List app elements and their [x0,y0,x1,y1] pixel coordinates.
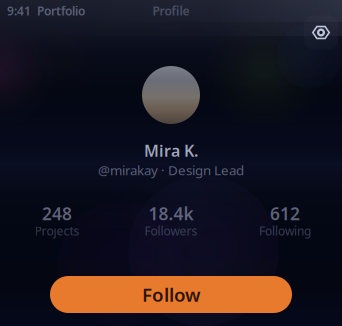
staticText: Followers [144,223,197,239]
staticText: 18.4k [148,202,193,225]
staticText: Projects [34,223,79,239]
staticText: 9:41 Portfolio [7,3,85,19]
staticText: Follow [142,282,200,307]
button[interactable]: Settings [304,15,338,49]
staticText: 248 [42,202,72,225]
staticText: 612 [270,202,300,225]
staticText: @mirakay · Design Lead [98,161,244,179]
button[interactable]: Follow [50,276,292,313]
staticText: Mira K. [144,140,198,161]
staticText: Profile [152,3,189,19]
staticText: Following [259,223,311,239]
